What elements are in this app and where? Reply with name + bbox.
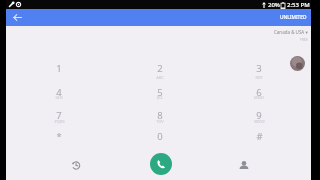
staticText: PQRS xyxy=(54,119,65,124)
staticText: WXYZ xyxy=(254,119,265,124)
staticText: 2 xyxy=(157,62,163,75)
button[interactable]: 1 xyxy=(26,57,92,80)
button[interactable]: Back xyxy=(10,10,25,25)
staticText: 6 xyxy=(256,86,262,99)
button[interactable]: Call history xyxy=(66,156,84,174)
staticText: 4 xyxy=(56,86,62,99)
button[interactable]: 0 xyxy=(127,125,193,148)
staticText: # xyxy=(256,130,263,143)
button[interactable]: Canada & USA ▾ xyxy=(226,29,308,42)
staticText: 1 xyxy=(56,62,62,75)
staticText: 7 xyxy=(56,109,62,122)
button[interactable]: Contacts xyxy=(235,156,253,174)
staticText: TUV xyxy=(156,119,164,124)
button[interactable]: 9 xyxy=(226,104,292,127)
staticText: 3 xyxy=(256,62,262,75)
staticText: MNO xyxy=(254,95,264,100)
button[interactable]: 4 xyxy=(26,81,92,104)
button[interactable]: # xyxy=(226,125,292,148)
staticText: JKL xyxy=(157,95,163,100)
staticText: 8 xyxy=(157,109,163,122)
staticText: 2:53 PM xyxy=(287,1,310,9)
button[interactable]: Call xyxy=(150,153,172,175)
staticText: 9 xyxy=(256,109,262,122)
button[interactable]: UNLIMITED xyxy=(280,14,307,21)
button[interactable]: 6 xyxy=(226,81,292,104)
staticText: GHI xyxy=(55,95,63,100)
staticText: * xyxy=(56,130,62,143)
staticText: Canada & USA ▾ xyxy=(274,29,308,35)
button[interactable]: 5 xyxy=(127,81,193,104)
button[interactable]: Profile xyxy=(290,56,305,71)
button[interactable]: * xyxy=(26,125,92,148)
staticText: DEF xyxy=(255,75,263,80)
staticText: ABC xyxy=(156,75,164,80)
staticText: UNLIMITED xyxy=(280,14,307,21)
button[interactable]: 3 xyxy=(226,57,292,80)
button[interactable]: 7 xyxy=(26,104,92,127)
staticText: FREE xyxy=(300,37,308,42)
staticText: 5 xyxy=(157,86,163,99)
button[interactable]: 2 xyxy=(127,57,193,80)
button[interactable]: 8 xyxy=(127,104,193,127)
staticText: 20% xyxy=(268,1,280,9)
staticText: 0 xyxy=(157,130,163,143)
